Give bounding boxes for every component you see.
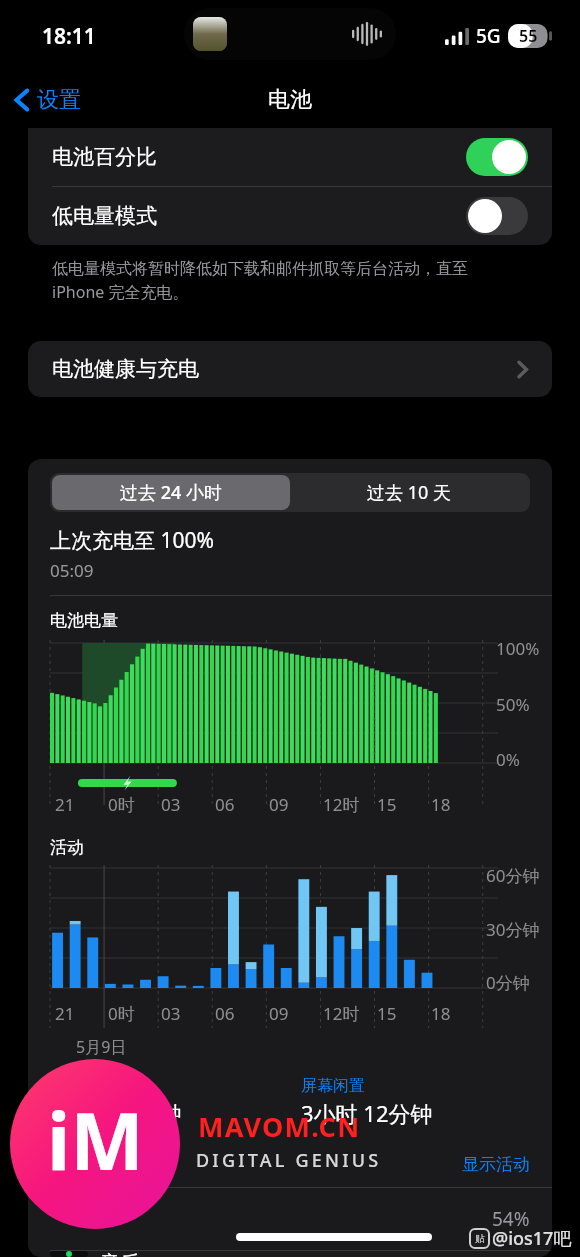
button[interactable]: 电池百分比 [28, 128, 552, 186]
staticText: 03 [161, 793, 181, 816]
button[interactable]: 54% [28, 1188, 552, 1250]
staticText: 18:11 [42, 22, 96, 51]
button[interactable]: 音乐 [28, 1251, 552, 1257]
staticText: 音乐 [100, 1251, 140, 1257]
staticText: 21 [55, 793, 75, 816]
staticText: 50% [496, 693, 530, 716]
staticText: 低电量模式将暂时降低如下载和邮件抓取等后台活动，直至 iPhone 完全充电。 [52, 259, 528, 303]
staticText: 05:09 [50, 559, 94, 582]
staticText: 0时 [108, 793, 135, 816]
staticText: 5G [476, 23, 501, 49]
staticText: 活动 [50, 837, 84, 858]
staticText: 电池百分比 [52, 144, 466, 170]
staticText: 电池 [268, 86, 312, 114]
staticText: 03 [161, 1002, 181, 1025]
staticText: 屏幕闲置 [301, 1076, 365, 1096]
staticText: 3小时 12分钟 [301, 1098, 433, 1128]
staticText: 上次充电至 100% [50, 526, 214, 555]
button[interactable]: 设置 [0, 80, 91, 120]
staticText: 低电量模式 [52, 203, 466, 229]
staticText: 12时 [323, 793, 360, 816]
button[interactable]: 低电量模式 [28, 187, 552, 245]
staticText: 过去 10 天 [367, 480, 451, 505]
button[interactable]: 电池健康与充电 [28, 341, 552, 397]
other: 电池百分比 [466, 138, 528, 176]
staticText: 15 [377, 1002, 397, 1025]
button[interactable]: 过去 24 小时 [52, 475, 290, 510]
staticText: 60分钟 [486, 864, 540, 887]
staticText: 18 [431, 793, 451, 816]
staticText: 21 [55, 1002, 75, 1025]
other: 低电量模式 [466, 197, 528, 235]
staticText: 30分钟 [486, 918, 540, 941]
staticText: 0% [496, 748, 520, 771]
button[interactable]: 显示活动 [440, 1150, 552, 1179]
staticText: 4小时 51分钟 [50, 1098, 182, 1128]
staticText: 电池健康与充电 [52, 356, 517, 382]
staticText: 0分钟 [486, 971, 530, 994]
button[interactable]: 过去 10 天 [290, 475, 528, 510]
staticText: 09 [269, 1002, 289, 1025]
staticText: 5月9日 [76, 1036, 127, 1058]
staticText: 过去 24 小时 [120, 480, 222, 505]
staticText: 贴 [475, 1232, 485, 1245]
staticText: 电池电量 [50, 610, 118, 631]
staticText: 06 [215, 793, 235, 816]
staticText: 06 [215, 1002, 235, 1025]
staticText: 55 [519, 25, 538, 47]
staticText: 0时 [108, 1002, 135, 1025]
staticText: 100% [496, 637, 540, 660]
staticText: 15 [377, 793, 397, 816]
staticText: 屏幕活跃 [50, 1076, 114, 1096]
staticText: 18 [431, 1002, 451, 1025]
staticText: DIGITAL GENIUS [196, 1148, 382, 1173]
staticText: MAVOM.CN [198, 1108, 361, 1145]
staticText: @ios17吧 [492, 1226, 572, 1251]
staticText: 09 [269, 793, 289, 816]
staticText: 设置 [37, 86, 81, 114]
staticText: iM [47, 1087, 144, 1193]
staticText: 12时 [323, 1002, 360, 1025]
staticText: 54% [492, 1206, 530, 1232]
